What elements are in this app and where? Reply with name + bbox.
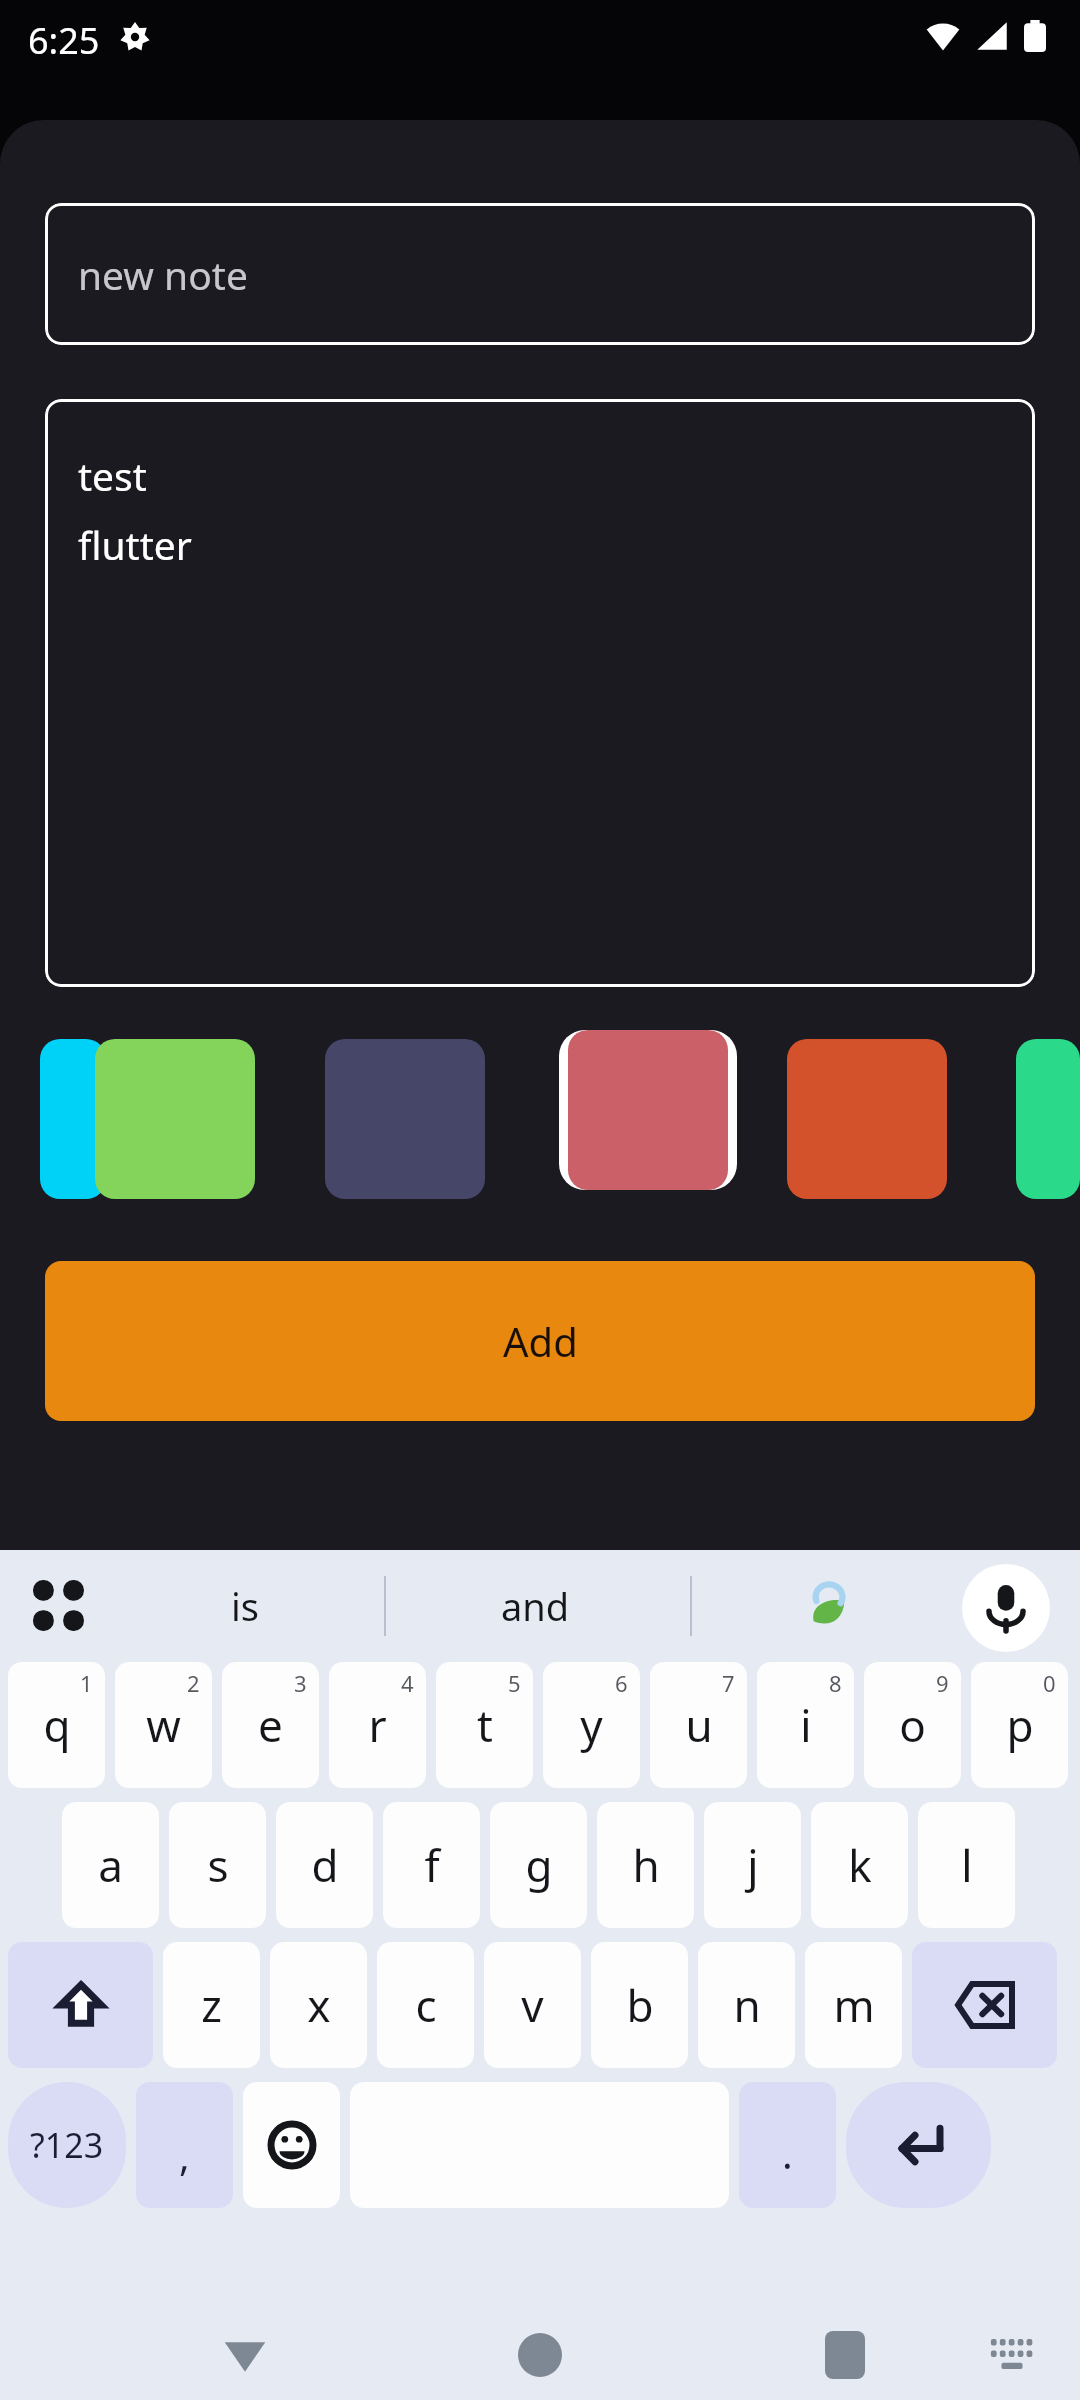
button[interactable]: o: [864, 1662, 961, 1788]
staticText: ?123: [30, 2122, 104, 2168]
button[interactable]: is: [140, 1550, 350, 1662]
button[interactable]: ?123: [8, 2082, 126, 2208]
button[interactable]: v: [484, 1942, 581, 2068]
button[interactable]: Spring green: [1016, 1039, 1080, 1199]
staticText: k: [848, 1835, 872, 1895]
button[interactable]: w: [115, 1662, 212, 1788]
staticText: ,: [179, 2128, 190, 2182]
button[interactable]: j: [704, 1802, 801, 1928]
button[interactable]: z: [163, 1942, 260, 2068]
staticText: r: [368, 1695, 387, 1755]
button[interactable]: k: [811, 1802, 908, 1928]
button[interactable]: Voice input: [962, 1564, 1050, 1652]
button[interactable]: i: [757, 1662, 854, 1788]
button[interactable]: new note: [45, 203, 1035, 345]
button[interactable]: q: [8, 1662, 105, 1788]
staticText: m: [833, 1975, 875, 2035]
button[interactable]: Indigo: [325, 1039, 485, 1199]
button[interactable]: Green: [95, 1039, 255, 1199]
staticText: s: [207, 1835, 229, 1895]
button[interactable]: Home: [485, 2310, 595, 2400]
button[interactable]: l: [918, 1802, 1015, 1928]
staticText: h: [632, 1835, 660, 1895]
staticText: new note: [78, 248, 248, 301]
staticText: .: [782, 2126, 793, 2180]
button[interactable]: c: [377, 1942, 474, 2068]
staticText: and: [501, 1580, 570, 1632]
button[interactable]: Rose selected: [559, 1030, 737, 1190]
staticText: p: [1006, 1695, 1034, 1755]
staticText: test: [78, 449, 147, 502]
button[interactable]: y: [543, 1662, 640, 1788]
button[interactable]: Cyan: [40, 1039, 106, 1199]
staticText: 5: [508, 1668, 521, 1698]
button[interactable]: p: [971, 1662, 1068, 1788]
staticText: t: [477, 1695, 493, 1755]
button[interactable]: Clipboard: [24, 1571, 94, 1641]
staticText: 9: [936, 1668, 949, 1698]
button[interactable]: x: [270, 1942, 367, 2068]
staticText: w: [146, 1695, 181, 1755]
staticText: n: [733, 1975, 761, 2035]
button[interactable]: b: [591, 1942, 688, 2068]
button[interactable]: Shift: [8, 1942, 153, 2068]
staticText: e: [258, 1695, 283, 1755]
button[interactable]: m: [805, 1942, 902, 2068]
staticText: z: [201, 1975, 222, 2035]
staticText: 1: [80, 1668, 93, 1698]
staticText: 7: [722, 1668, 735, 1698]
other: Settings: [120, 22, 150, 52]
button[interactable]: ,: [136, 2082, 233, 2208]
staticText: d: [311, 1835, 339, 1895]
staticText: u: [685, 1695, 713, 1755]
button[interactable]: s: [169, 1802, 266, 1928]
staticText: 6:25: [28, 16, 100, 65]
button[interactable]: Add: [45, 1261, 1035, 1421]
button[interactable]: d: [276, 1802, 373, 1928]
button[interactable]: Translate: [805, 1582, 853, 1630]
button[interactable]: t: [436, 1662, 533, 1788]
staticText: l: [961, 1835, 973, 1895]
button[interactable]: f: [383, 1802, 480, 1928]
staticText: 0: [1043, 1668, 1056, 1698]
staticText: 8: [829, 1668, 842, 1698]
button[interactable]: r: [329, 1662, 426, 1788]
button[interactable]: Hide keyboard: [190, 2310, 300, 2400]
button[interactable]: Emoji: [243, 2082, 340, 2208]
staticText: q: [43, 1695, 71, 1755]
button[interactable]: .: [739, 2082, 836, 2208]
button[interactable]: a: [62, 1802, 159, 1928]
button[interactable]: h: [597, 1802, 694, 1928]
staticText: c: [415, 1975, 437, 2035]
staticText: v: [521, 1975, 544, 2035]
button[interactable]: Recents: [790, 2310, 900, 2400]
staticText: 2: [187, 1668, 200, 1698]
button[interactable]: n: [698, 1942, 795, 2068]
staticText: b: [626, 1975, 654, 2035]
staticText: 3: [294, 1668, 307, 1698]
staticText: g: [525, 1835, 553, 1895]
button[interactable]: Switch keyboard: [962, 2310, 1062, 2400]
button[interactable]: test: [45, 399, 1035, 987]
staticText: Add: [503, 1314, 578, 1368]
staticText: is: [231, 1580, 260, 1632]
button[interactable]: and: [430, 1550, 640, 1662]
button[interactable]: u: [650, 1662, 747, 1788]
staticText: j: [747, 1835, 759, 1895]
button[interactable]: e: [222, 1662, 319, 1788]
button[interactable]: Backspace: [912, 1942, 1057, 2068]
staticText: i: [800, 1695, 812, 1755]
staticText: x: [307, 1975, 331, 2035]
button[interactable]: g: [490, 1802, 587, 1928]
staticText: 6: [615, 1668, 628, 1698]
button[interactable]: Orange red: [787, 1039, 947, 1199]
staticText: f: [424, 1835, 440, 1895]
staticText: o: [899, 1695, 926, 1755]
button[interactable]: Enter: [846, 2082, 991, 2208]
staticText: flutter: [78, 518, 192, 571]
staticText: a: [98, 1835, 123, 1895]
staticText: 4: [401, 1668, 414, 1698]
staticText: y: [580, 1695, 603, 1755]
